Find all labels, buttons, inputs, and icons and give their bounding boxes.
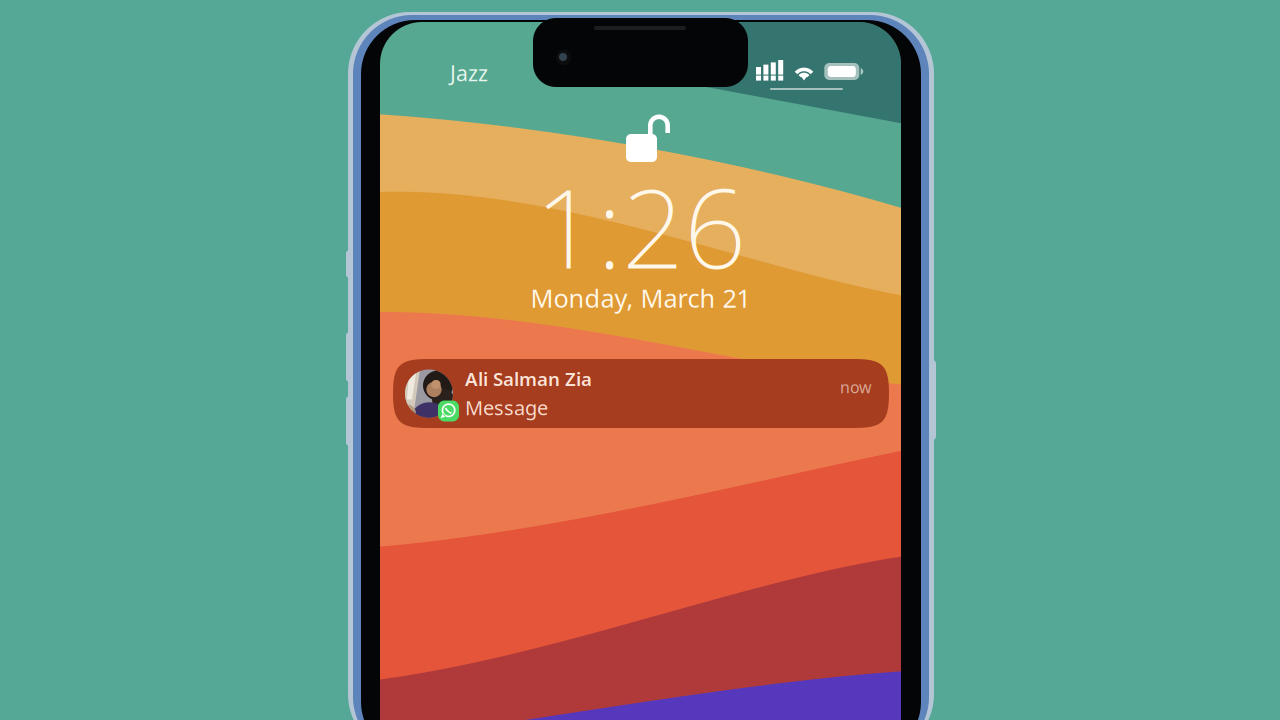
staticText: 1:26 [535,153,746,299]
staticText: Message [465,394,548,421]
button[interactable]: Ali Salman Zia [393,359,889,428]
staticText: Jazz [450,59,488,87]
staticText: now [840,376,872,398]
staticText: Ali Salman Zia [465,366,592,391]
staticText: Monday, March 21 [530,281,750,315]
